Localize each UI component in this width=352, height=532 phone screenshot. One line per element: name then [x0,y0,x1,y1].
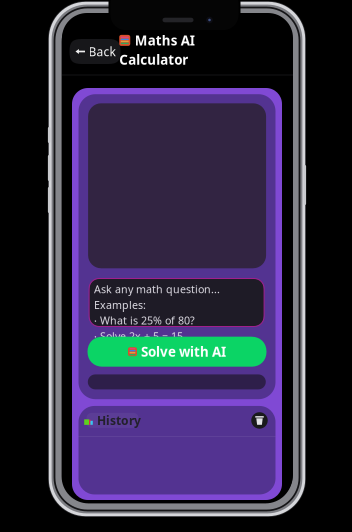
staticText: Calculator [119,51,188,68]
staticText: Ask any math question... [94,282,220,296]
staticText: · Solve 2x + 5 = 15 [94,329,183,343]
staticText: Back [88,43,115,59]
button[interactable]: Back [69,39,120,64]
staticText: · What is 25% of 80? [94,313,195,327]
staticText: Maths AI [135,31,195,49]
staticText: History [97,412,141,428]
staticText: Solve with AI [141,343,226,360]
staticText: Examples: [94,298,146,312]
button[interactable]: Solve with AI [87,337,266,367]
button[interactable]: Clear history [248,409,270,431]
